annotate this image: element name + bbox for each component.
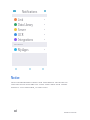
staticText: OCR [18,33,24,37]
staticText: GENERAL [14,43,24,46]
button[interactable]: Back [13,10,16,12]
button[interactable]: Link [12,17,47,22]
button[interactable]: My Apps [12,47,47,52]
staticText: Notifications [22,10,38,13]
staticText: Read more [64,110,77,113]
staticText: Data Library [18,23,33,27]
button[interactable]: Tab 3 [41,66,45,72]
button[interactable]: Integrations [12,37,47,42]
button[interactable]: Tab 1 [14,66,18,72]
button[interactable]: OCR [12,32,47,37]
staticText: Server [18,28,26,32]
staticText: ai [14,109,17,113]
button[interactable]: Data Library [12,22,47,27]
staticText: My Apps [18,48,29,52]
button[interactable]: Tab 2 [28,66,32,72]
staticText: Notice [11,76,20,80]
staticText: Most independent apps like Managers cont… [11,80,71,89]
staticText: Integrations [18,38,33,42]
button[interactable]: Server [12,27,47,32]
staticText: Link [18,18,24,22]
